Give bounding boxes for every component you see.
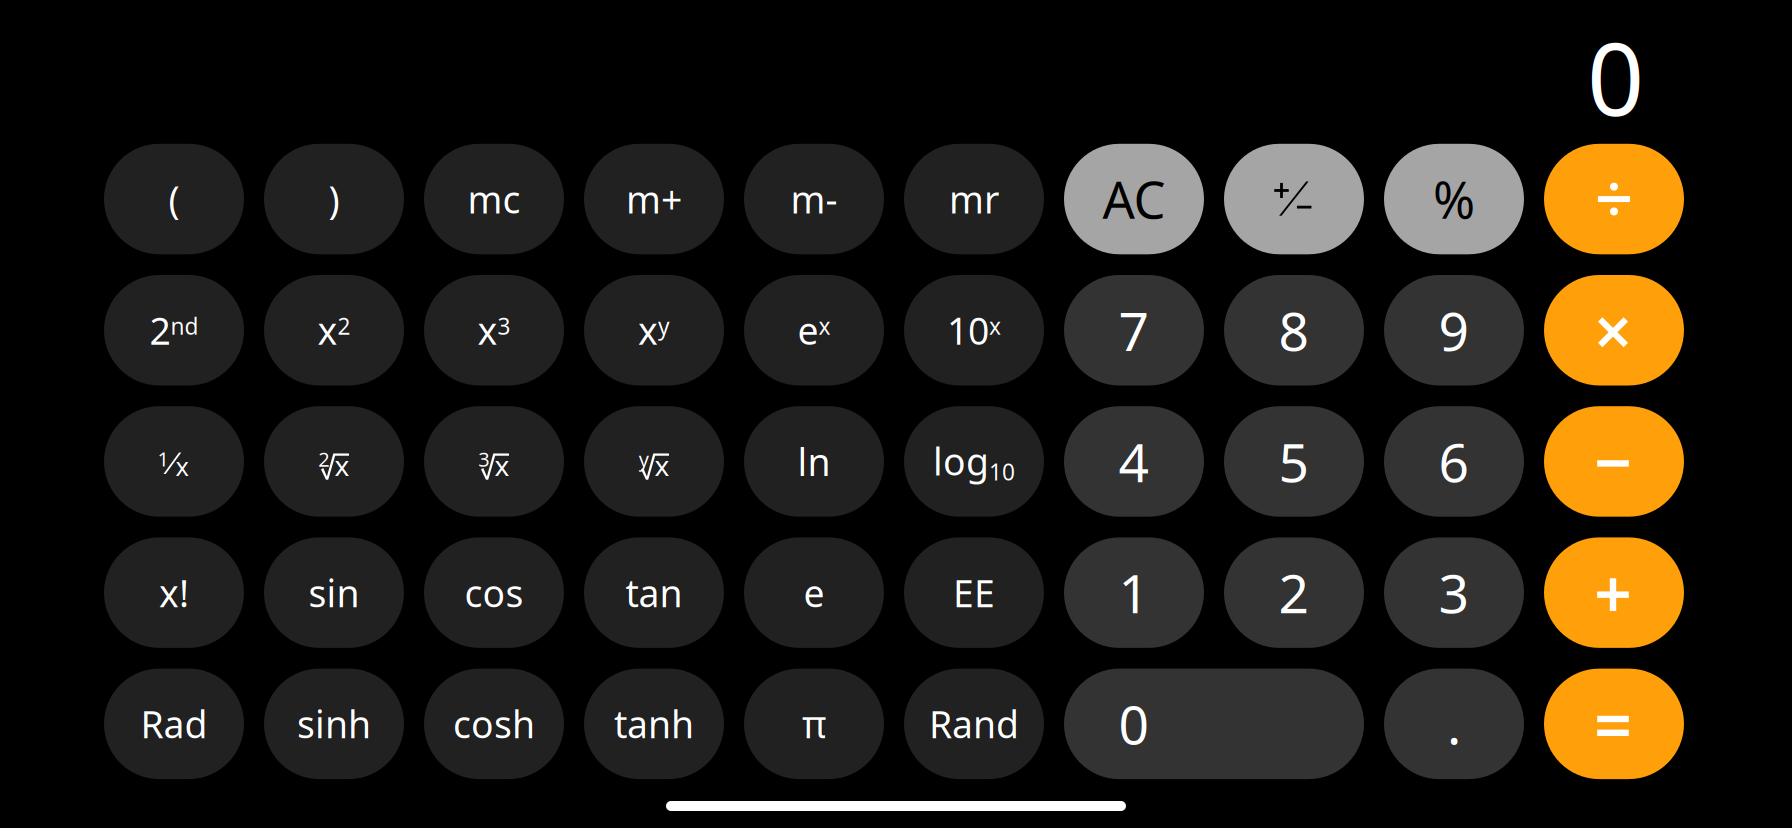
button[interactable]: Equals (1544, 669, 1684, 779)
staticText: 0 (1118, 688, 1149, 759)
button[interactable]: xy (584, 275, 724, 385)
button[interactable]: x! (104, 537, 244, 648)
staticText: 3 (1438, 557, 1469, 628)
button[interactable]: e (744, 537, 884, 648)
staticText: xy (638, 305, 670, 355)
button[interactable]: Divide (1544, 144, 1684, 254)
button[interactable]: 10x (904, 275, 1044, 385)
button[interactable]: 7 (1064, 275, 1204, 385)
button[interactable]: Toggle sign (1224, 144, 1364, 254)
staticText: AC (1102, 165, 1165, 233)
staticText: x (654, 447, 669, 484)
staticText: x! (159, 568, 189, 617)
button[interactable]: 0 (1064, 669, 1364, 779)
button[interactable]: sinh (264, 669, 404, 779)
staticText: 5 (1278, 426, 1309, 497)
button[interactable]: Rad (104, 669, 244, 779)
staticText: cosh (453, 699, 535, 749)
button[interactable]: log10 (904, 406, 1044, 517)
staticText: log10 (933, 436, 1015, 487)
staticText: 3 (478, 446, 489, 472)
staticText: y (639, 446, 649, 472)
button[interactable]: 3 (1384, 537, 1524, 648)
button[interactable]: 8 (1224, 275, 1364, 385)
staticText: mr (949, 174, 999, 224)
staticText: x (175, 449, 188, 483)
button[interactable]: 1 (104, 406, 244, 517)
button[interactable]: 2 (264, 406, 404, 517)
button[interactable]: 6 (1384, 406, 1524, 517)
staticText: m+ (626, 174, 682, 224)
button[interactable]: tan (584, 537, 724, 648)
button[interactable]: x2 (264, 275, 404, 385)
staticText: EE (953, 568, 995, 617)
button[interactable]: sin (264, 537, 404, 648)
button[interactable]: 5 (1224, 406, 1364, 517)
staticText: m- (790, 174, 837, 224)
button[interactable]: 4 (1064, 406, 1204, 517)
staticText: mc (467, 174, 520, 224)
staticText: ex (797, 305, 830, 355)
button[interactable]: cos (424, 537, 564, 648)
staticText: sin (308, 568, 359, 617)
staticText: e (803, 568, 824, 617)
staticText: 2 (318, 446, 329, 472)
staticText: ( (168, 174, 179, 224)
button[interactable]: ln (744, 406, 884, 517)
staticText: cos (464, 568, 523, 617)
button[interactable]: ex (744, 275, 884, 385)
staticText: x2 (317, 305, 350, 355)
button[interactable]: ( (104, 144, 244, 254)
staticText: 6 (1438, 426, 1469, 497)
staticText: % (1433, 165, 1475, 233)
button[interactable]: % (1384, 144, 1524, 254)
button[interactable]: Rand (904, 669, 1044, 779)
staticText: . (1447, 688, 1461, 759)
button[interactable]: m- (744, 144, 884, 254)
button[interactable]: ) (264, 144, 404, 254)
staticText: ln (797, 437, 830, 486)
button[interactable]: mr (904, 144, 1044, 254)
staticText: 2nd (149, 305, 198, 355)
button[interactable]: m+ (584, 144, 724, 254)
button[interactable]: 1 (1064, 537, 1204, 648)
staticText: 7 (1118, 295, 1149, 366)
button[interactable]: π (744, 669, 884, 779)
button[interactable]: Minus (1544, 406, 1684, 517)
button[interactable]: tanh (584, 669, 724, 779)
staticText: 1 (1118, 557, 1149, 628)
button[interactable]: x3 (424, 275, 564, 385)
button[interactable]: y (584, 406, 724, 517)
button[interactable]: 3 (424, 406, 564, 517)
button[interactable]: EE (904, 537, 1044, 648)
staticText: x (334, 447, 349, 484)
staticText: x3 (477, 305, 510, 355)
staticText: π (802, 699, 826, 749)
staticText: tanh (614, 699, 694, 749)
button[interactable]: 9 (1384, 275, 1524, 385)
button[interactable]: cosh (424, 669, 564, 779)
staticText: Rad (140, 699, 207, 749)
button[interactable]: mc (424, 144, 564, 254)
button[interactable]: AC (1064, 144, 1204, 254)
staticText: 9 (1438, 295, 1469, 366)
button[interactable]: Multiply (1544, 275, 1684, 385)
staticText: Rand (929, 699, 1019, 749)
button[interactable]: 2 (1224, 537, 1364, 648)
staticText: x (494, 447, 509, 484)
button[interactable]: . (1384, 669, 1524, 779)
button[interactable]: Plus (1544, 537, 1684, 648)
staticText: 2 (1278, 557, 1309, 628)
staticText: 4 (1118, 426, 1149, 497)
button[interactable]: 2nd (104, 275, 244, 385)
staticText: 0 (1587, 11, 1644, 143)
staticText: 10x (947, 305, 1001, 355)
staticText: 8 (1278, 295, 1309, 366)
staticText: ) (328, 174, 339, 224)
staticText: sinh (297, 699, 371, 749)
staticText: tan (625, 568, 682, 617)
staticText: 1 (157, 446, 168, 472)
